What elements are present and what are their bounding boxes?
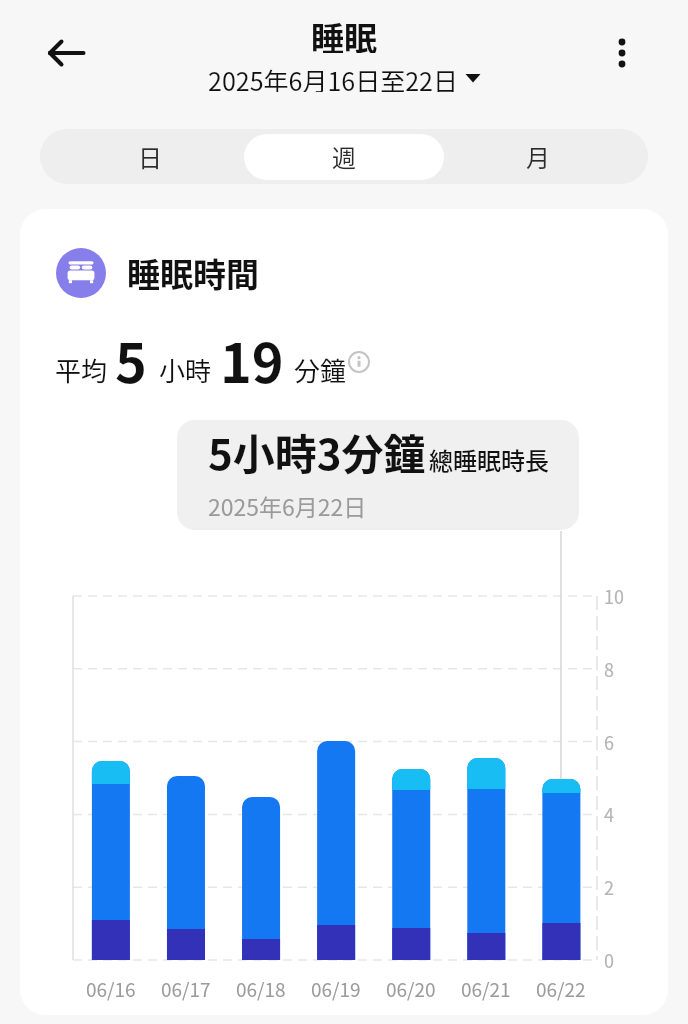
staticText: 週 xyxy=(332,139,356,174)
staticText: 日 xyxy=(138,139,162,174)
staticText: 06/21 xyxy=(461,975,511,1003)
staticText: 10 xyxy=(604,583,624,609)
button[interactable]: 日 xyxy=(53,129,247,184)
staticText: 19 xyxy=(220,320,284,398)
staticText: 06/16 xyxy=(86,975,136,1003)
staticText: 2025年6月16日至22日 xyxy=(208,62,458,92)
button[interactable]: 月 xyxy=(441,129,635,184)
staticText: 4 xyxy=(604,801,614,827)
staticText: 平均 xyxy=(55,351,108,389)
staticText: 06/17 xyxy=(161,975,211,1003)
staticText: 5小時3分鐘 xyxy=(208,421,426,482)
staticText: 06/22 xyxy=(536,975,586,1003)
button[interactable] xyxy=(40,33,88,73)
staticText: 睡眠 xyxy=(311,13,377,53)
button[interactable]: 2025年6月16日至22日 xyxy=(208,62,481,92)
staticText: 06/20 xyxy=(386,975,436,1003)
staticText: 2025年6月22日 xyxy=(208,489,367,522)
button[interactable]: 週 xyxy=(247,129,441,184)
staticText: 總睡眠時長 xyxy=(429,442,549,477)
staticText: 8 xyxy=(604,656,614,682)
staticText: 小時 xyxy=(159,351,212,389)
button[interactable] xyxy=(600,31,644,75)
staticText: 06/19 xyxy=(311,975,361,1003)
staticText: 06/18 xyxy=(236,975,286,1003)
staticText: 6 xyxy=(604,729,614,755)
staticText: 0 xyxy=(604,947,614,973)
staticText: 2 xyxy=(604,874,614,900)
staticText: 分鐘 xyxy=(294,351,347,389)
staticText: 月 xyxy=(526,139,550,174)
button[interactable] xyxy=(348,351,370,373)
staticText: 5 xyxy=(115,320,147,398)
staticText: 睡眠時間 xyxy=(127,249,259,297)
